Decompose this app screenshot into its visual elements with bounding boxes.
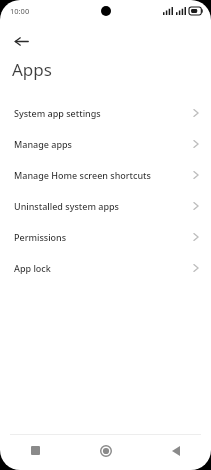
button[interactable]: App lock: [0, 252, 211, 283]
staticText: Manage Home screen shortcuts: [14, 169, 193, 181]
button[interactable]: Back: [141, 435, 211, 466]
button[interactable]: Recents: [0, 435, 71, 466]
button[interactable]: System app settings: [0, 97, 211, 128]
button[interactable]: Permissions: [0, 221, 211, 252]
staticText: App lock: [14, 262, 193, 274]
button[interactable]: Manage Home screen shortcuts: [0, 159, 211, 190]
staticText: Uninstalled system apps: [14, 200, 193, 212]
staticText: Apps: [12, 58, 52, 81]
button[interactable]: Back: [6, 26, 36, 56]
staticText: System app settings: [14, 107, 193, 119]
staticText: 10:00: [10, 6, 30, 16]
staticText: Manage apps: [14, 138, 193, 150]
button[interactable]: Uninstalled system apps: [0, 190, 211, 221]
button[interactable]: Manage apps: [0, 128, 211, 159]
staticText: Permissions: [14, 231, 193, 243]
button[interactable]: Home: [71, 435, 141, 466]
